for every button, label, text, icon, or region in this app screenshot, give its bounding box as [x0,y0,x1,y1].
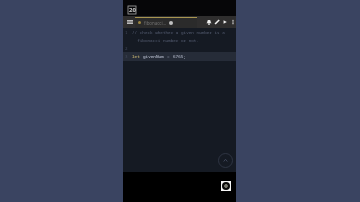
staticText: 6765; [173,53,186,59]
staticText: 3 [125,53,128,59]
button[interactable]: Notifications [205,16,212,27]
button[interactable]: Edit [213,16,220,27]
button[interactable]: fibonacci... [135,16,197,28]
staticText: 1 [125,29,128,35]
staticText: 20 [129,6,136,14]
button[interactable]: Menu [124,16,135,28]
staticText: fibonacci... [144,20,167,26]
staticText: fibonacci number or not. [132,37,200,43]
staticText: 2 [125,45,128,51]
staticText: // check whether a given number is a [132,29,225,35]
button[interactable]: Run [221,16,228,27]
staticText: let [132,53,143,59]
staticText: givenNum [143,53,167,59]
button[interactable]: More options [229,16,236,27]
button[interactable]: Keyboard [218,153,233,168]
staticText: = [167,53,173,59]
